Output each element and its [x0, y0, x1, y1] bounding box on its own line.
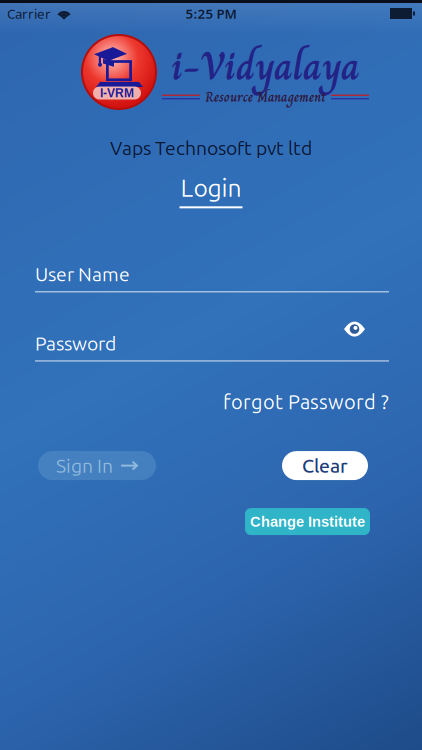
staticText: Password: [35, 332, 116, 354]
staticText: Login: [180, 174, 241, 201]
staticText: I-VRM: [100, 86, 134, 100]
staticText: Sign In: [56, 455, 113, 476]
button[interactable]: Show password: [344, 323, 365, 336]
staticText: 5:25 PM: [185, 5, 236, 22]
staticText: Clear: [302, 455, 348, 476]
staticText: forgot Password ?: [223, 391, 389, 413]
button[interactable]: Sign In: [38, 451, 156, 480]
staticText: Change Institute: [250, 513, 365, 530]
staticText: User Name: [35, 263, 130, 285]
staticText: Vaps Technosoft pvt ltd: [110, 137, 312, 159]
staticText: Carrier: [7, 5, 51, 22]
button[interactable]: Change Institute: [245, 508, 370, 535]
staticText: Resource Management: [205, 86, 326, 108]
button[interactable]: Clear: [282, 451, 368, 480]
button[interactable]: forgot Password ?: [223, 391, 389, 413]
staticText: i-Vidyalaya: [171, 35, 360, 97]
